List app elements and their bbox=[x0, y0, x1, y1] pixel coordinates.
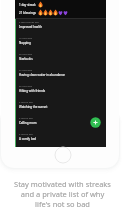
staticText: Improved health bbox=[19, 25, 42, 29]
button[interactable]: a month ago bbox=[16, 131, 106, 147]
staticText: 15 mins ago bbox=[19, 37, 33, 40]
button[interactable]: a month ago bbox=[16, 115, 106, 131]
staticText: a month ago bbox=[19, 117, 33, 120]
staticText: a month ago bbox=[19, 101, 33, 104]
staticText: 1 day streak bbox=[19, 3, 36, 7]
button[interactable]: 37 mins ago bbox=[16, 67, 106, 83]
staticText: A comfy bed bbox=[19, 137, 37, 141]
button[interactable]: 15 mins ago bbox=[16, 35, 106, 51]
staticText: a month ago bbox=[19, 133, 33, 136]
staticText: Having clean water in abundance bbox=[19, 73, 66, 77]
staticText: 37 mins ago bbox=[19, 69, 33, 72]
button[interactable]: a few seconds ago bbox=[16, 19, 106, 35]
staticText: a few seconds ago bbox=[19, 21, 39, 24]
button[interactable]: a month ago bbox=[16, 99, 106, 115]
button[interactable]: 21 blessings bbox=[15, 9, 106, 16]
button[interactable]: 55 mins ago bbox=[16, 83, 106, 99]
button[interactable]: Add blessing bbox=[86, 113, 105, 132]
staticText: Starbucks bbox=[19, 57, 33, 61]
button[interactable]: 28 mins ago bbox=[16, 51, 106, 67]
staticText: 55 mins ago bbox=[19, 85, 33, 88]
staticText: Napping bbox=[19, 41, 31, 45]
staticText: Stay motivated with streaks and a privat… bbox=[14, 179, 111, 209]
staticText: 28 mins ago bbox=[19, 53, 33, 56]
staticText: Watching the sunset bbox=[19, 105, 48, 109]
staticText: 21 blessings bbox=[19, 11, 36, 15]
staticText: Hiking with friends bbox=[19, 89, 46, 93]
button[interactable]: 1 day streak bbox=[15, 1, 106, 8]
staticText: Calling mom bbox=[19, 121, 37, 125]
